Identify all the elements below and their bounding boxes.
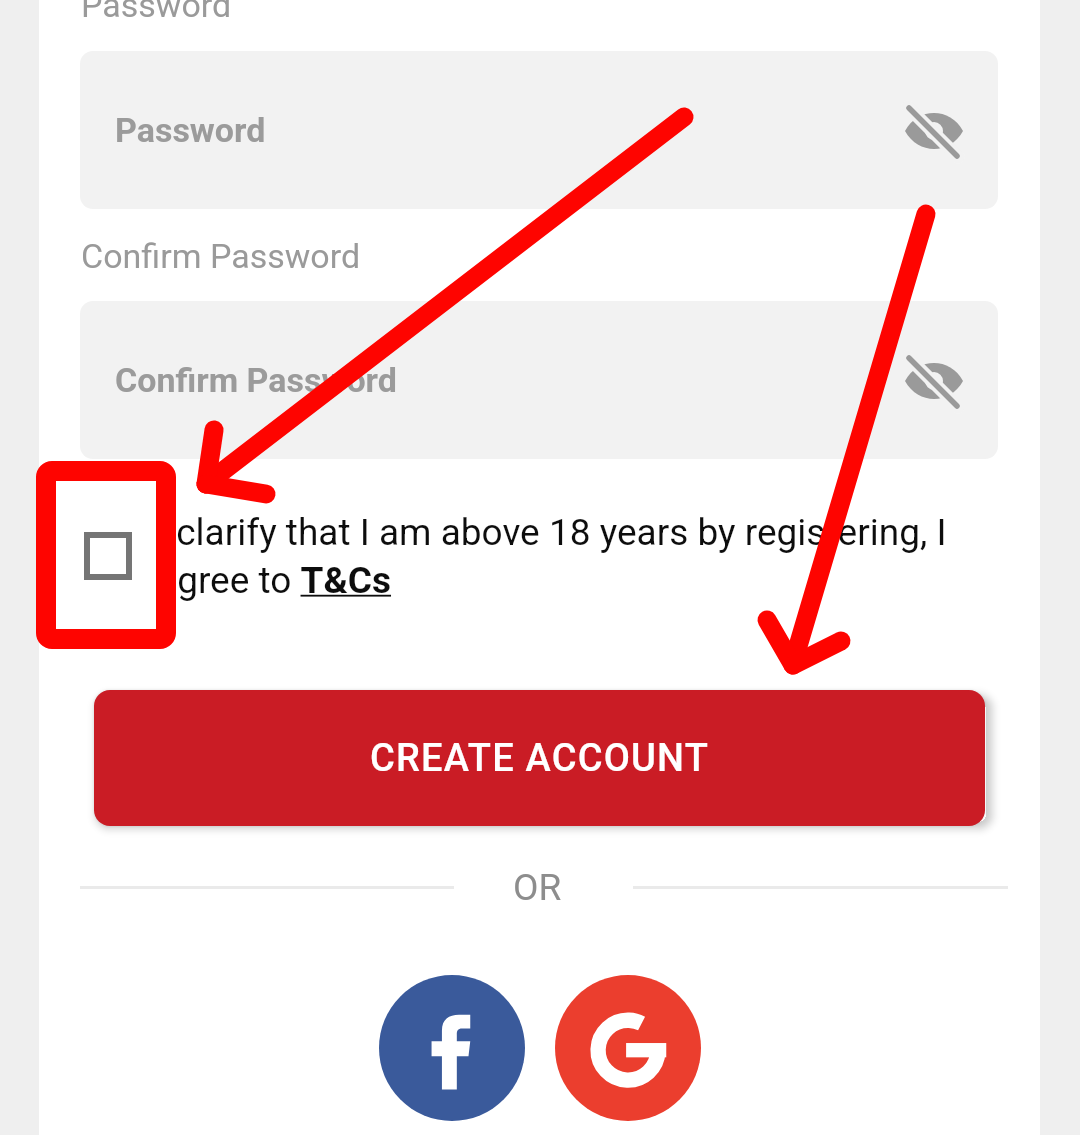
staticText: CREATE ACCOUNT [370, 736, 710, 781]
button[interactable]: Show password [894, 341, 974, 421]
button[interactable]: I clarify that I am above 18 years [84, 532, 132, 580]
staticText: Password [115, 110, 266, 150]
staticText: Password [81, 0, 232, 25]
button[interactable]: CREATE ACCOUNT [94, 690, 985, 826]
staticText: Confirm Password [115, 360, 397, 400]
staticText: Confirm Password [81, 236, 361, 276]
staticText: OR [513, 866, 562, 909]
button[interactable]: Password [80, 51, 998, 209]
staticText: I clarify that I am above 18 years by re… [157, 511, 1005, 602]
button[interactable]: Confirm Password [80, 301, 998, 459]
button[interactable]: Sign up with Google [555, 975, 701, 1121]
button[interactable]: Show password [894, 91, 974, 171]
button[interactable]: Sign up with Facebook [379, 975, 525, 1121]
